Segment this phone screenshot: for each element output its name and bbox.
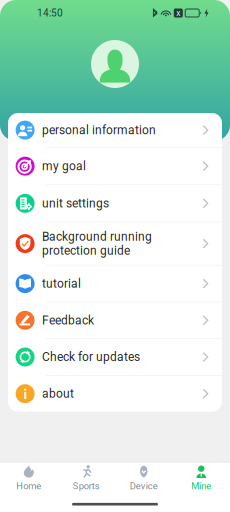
staticText: Check for updates xyxy=(42,350,140,364)
staticText: Mine xyxy=(191,480,211,491)
button[interactable]: about xyxy=(8,376,222,412)
staticText: personal information xyxy=(42,123,156,137)
button[interactable]: Home xyxy=(0,465,57,491)
staticText: tutorial xyxy=(42,277,81,291)
button[interactable]: unit settings xyxy=(8,185,222,222)
button[interactable]: Background running protection guide xyxy=(8,222,222,265)
staticText: unit settings xyxy=(42,196,109,210)
button[interactable]: Device xyxy=(115,465,172,491)
staticText: my goal xyxy=(42,159,86,173)
staticText: about xyxy=(42,387,74,401)
staticText: Sports xyxy=(73,480,100,491)
staticText: 14:50 xyxy=(37,7,63,19)
staticText: Device xyxy=(130,480,158,491)
button[interactable]: personal information xyxy=(8,113,222,147)
staticText: Feedback xyxy=(42,313,94,327)
button[interactable]: Sports xyxy=(57,465,115,491)
button[interactable]: my goal xyxy=(8,148,222,184)
button[interactable]: tutorial xyxy=(8,266,222,302)
button[interactable]: Mine xyxy=(172,465,230,491)
staticText: Home xyxy=(16,480,41,491)
staticText: Background running protection guide xyxy=(42,229,152,258)
button[interactable]: Check for updates xyxy=(8,339,222,375)
staticText: x xyxy=(176,8,180,18)
button[interactable]: Feedback xyxy=(8,302,222,338)
